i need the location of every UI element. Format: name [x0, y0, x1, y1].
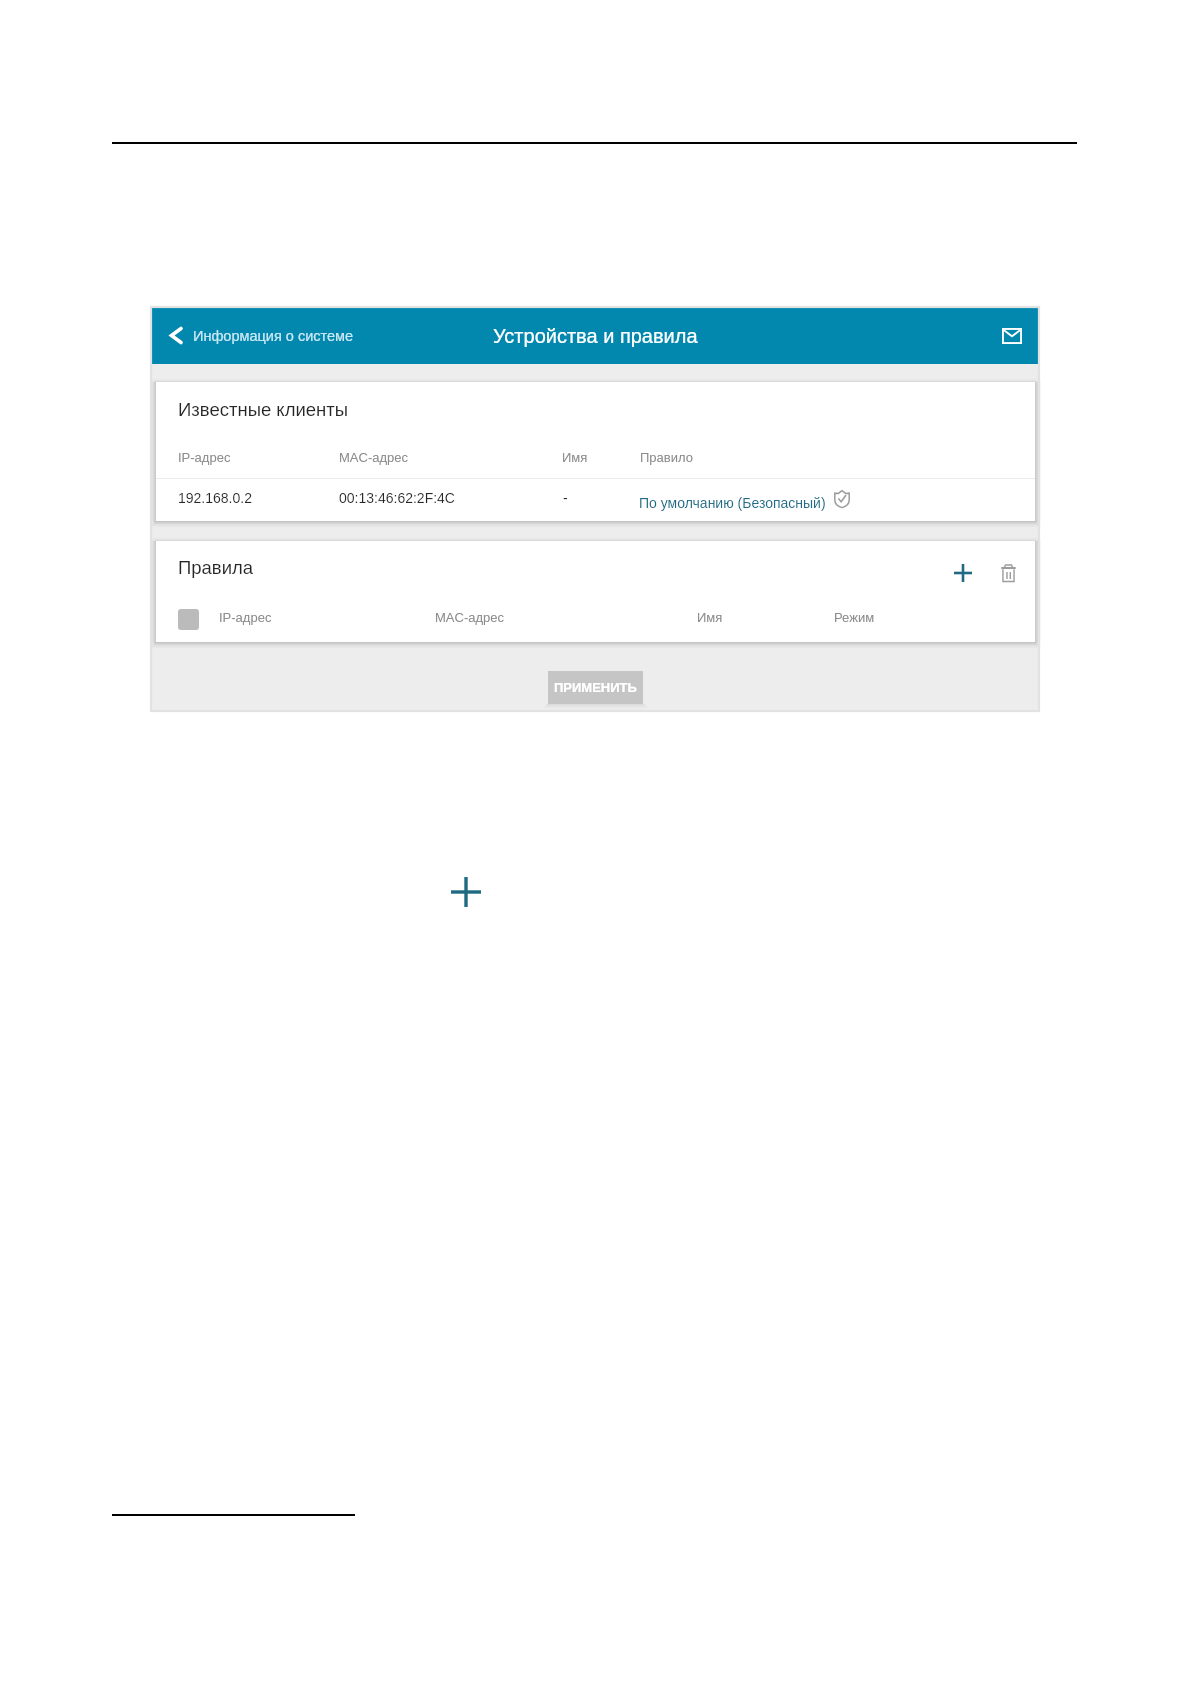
staticText: Правило [640, 450, 693, 465]
button[interactable]: Select all rules [178, 609, 199, 630]
button[interactable]: Delete rules [990, 555, 1026, 591]
staticText: 00:13:46:62:2F:4C [339, 490, 455, 506]
button[interactable]: 192.168.0.2 [156, 479, 1035, 521]
staticText: Имя [562, 450, 588, 465]
staticText: Информация о системе [193, 328, 354, 344]
staticText: MAC-адрес [339, 450, 408, 465]
staticText: Устройства и правила [493, 325, 698, 347]
staticText: Правила [178, 557, 254, 578]
staticText: Имя [697, 610, 723, 625]
staticText: IP-адрес [219, 610, 272, 625]
button[interactable]: Add rule [945, 555, 981, 591]
staticText: - [563, 490, 568, 506]
staticText: Известные клиенты [178, 399, 349, 420]
staticText: IP-адрес [178, 450, 231, 465]
staticText: По умолчанию (Безопасный) [639, 495, 826, 511]
staticText: Режим [834, 610, 875, 625]
staticText: 192.168.0.2 [178, 490, 252, 506]
staticText: MAC-адрес [435, 610, 504, 625]
button[interactable]: Информация о системе [170, 307, 354, 364]
button[interactable]: ПРИМЕНИТЬ [548, 671, 643, 704]
button[interactable]: Messages [986, 307, 1038, 364]
staticText: ПРИМЕНИТЬ [554, 680, 637, 695]
